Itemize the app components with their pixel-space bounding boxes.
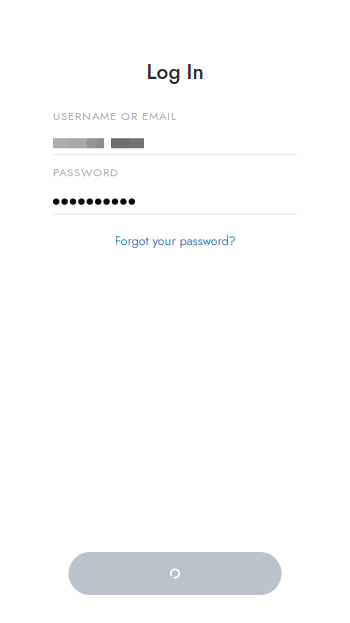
staticText: PASSWORD [53, 164, 118, 181]
button[interactable]: Log in [68, 552, 281, 595]
staticText: Log In [146, 57, 203, 87]
staticText: USERNAME OR EMAIL [53, 108, 176, 124]
button[interactable]: Forgot your password? [53, 215, 297, 256]
staticText: Forgot your password? [114, 232, 235, 250]
